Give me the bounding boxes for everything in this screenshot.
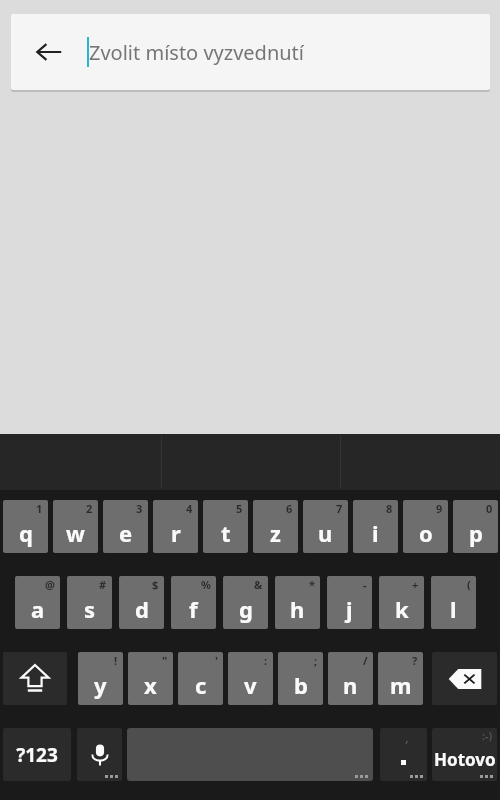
staticText: ( xyxy=(467,577,471,592)
staticText: q xyxy=(19,518,33,548)
button[interactable]: Backspace xyxy=(432,652,497,705)
button[interactable]: & xyxy=(223,576,268,629)
staticText: h xyxy=(290,594,305,624)
button[interactable]: :-) xyxy=(432,728,497,781)
staticText: f xyxy=(189,594,198,624)
staticText: d xyxy=(135,594,149,624)
staticText: Zvolit místo vyzvednutí xyxy=(89,39,304,66)
button[interactable]: 2 xyxy=(53,500,98,553)
staticText: 4 xyxy=(186,501,193,516)
staticText: v xyxy=(244,670,257,700)
staticText: m xyxy=(390,670,412,700)
button[interactable]: % xyxy=(171,576,216,629)
button[interactable]: + xyxy=(379,576,424,629)
staticText: 5 xyxy=(236,501,243,516)
staticText: o xyxy=(419,518,433,548)
button[interactable]: * xyxy=(275,576,320,629)
button[interactable]: Shift xyxy=(3,652,67,705)
staticText: n xyxy=(343,670,358,700)
staticText: 6 xyxy=(286,501,293,516)
staticText: / xyxy=(363,653,368,668)
button[interactable]: ' xyxy=(178,652,223,705)
staticText: p xyxy=(469,518,483,548)
button[interactable]: / xyxy=(328,652,373,705)
button[interactable]: " xyxy=(128,652,173,705)
button[interactable]: ?123 xyxy=(3,728,71,781)
staticText: u xyxy=(318,518,333,548)
button[interactable]: Voice input xyxy=(77,728,122,781)
staticText: + xyxy=(412,577,419,592)
staticText: r xyxy=(171,518,181,548)
staticText: 7 xyxy=(336,501,343,516)
staticText: Hotovo xyxy=(434,748,496,771)
staticText: # xyxy=(99,577,107,592)
staticText: e xyxy=(119,518,133,548)
staticText: : xyxy=(264,653,268,668)
button[interactable]: $ xyxy=(119,576,164,629)
button[interactable]: # xyxy=(67,576,112,629)
button[interactable]: 7 xyxy=(303,500,348,553)
staticText: % xyxy=(201,577,211,592)
staticText: g xyxy=(239,594,253,624)
button[interactable]: - xyxy=(327,576,372,629)
button[interactable]: 6 xyxy=(253,500,298,553)
staticText: 0 xyxy=(486,501,493,516)
staticText: ! xyxy=(114,653,118,668)
button[interactable]: 4 xyxy=(153,500,198,553)
staticText: :-) xyxy=(482,728,493,743)
staticText: $ xyxy=(152,577,159,592)
staticText: 3 xyxy=(136,501,143,516)
button[interactable]: 9 xyxy=(403,500,448,553)
staticText: - xyxy=(363,577,367,592)
button[interactable]: @ xyxy=(15,576,60,629)
staticText: 1 xyxy=(36,501,43,516)
staticText: j xyxy=(346,594,353,624)
staticText: ?123 xyxy=(16,742,58,768)
button[interactable]: ( xyxy=(431,576,476,629)
staticText: 8 xyxy=(386,501,393,516)
button[interactable]: 1 xyxy=(3,500,48,553)
staticText: ' xyxy=(215,653,218,668)
button[interactable]: Back xyxy=(11,14,490,90)
staticText: * xyxy=(309,577,315,592)
button[interactable]: Back xyxy=(11,14,87,90)
staticText: a xyxy=(31,594,45,624)
staticText: t xyxy=(221,518,231,548)
staticText: c xyxy=(195,670,207,700)
staticText: ? xyxy=(412,653,418,668)
button[interactable]: ! xyxy=(78,652,123,705)
staticText: k xyxy=(395,594,409,624)
button[interactable]: : xyxy=(228,652,273,705)
staticText: z xyxy=(270,518,281,548)
staticText: b xyxy=(294,670,308,700)
button[interactable]: Space xyxy=(127,728,373,781)
staticText: 2 xyxy=(86,501,93,516)
staticText: 9 xyxy=(436,501,443,516)
staticText: i xyxy=(372,518,379,548)
button[interactable]: Period xyxy=(380,728,427,781)
staticText: w xyxy=(66,518,85,548)
staticText: y xyxy=(94,670,107,700)
button[interactable]: 0 xyxy=(453,500,498,553)
staticText: " xyxy=(162,653,168,668)
button[interactable]: ? xyxy=(378,652,423,705)
button[interactable]: ; xyxy=(278,652,323,705)
button[interactable]: 8 xyxy=(353,500,398,553)
staticText: & xyxy=(254,577,263,592)
button[interactable]: 5 xyxy=(203,500,248,553)
staticText: @ xyxy=(45,577,55,592)
button[interactable]: 3 xyxy=(103,500,148,553)
staticText: ; xyxy=(314,653,318,668)
staticText: l xyxy=(450,594,457,624)
staticText: x xyxy=(144,670,157,700)
staticText: s xyxy=(84,594,96,624)
staticText: , xyxy=(405,728,409,746)
